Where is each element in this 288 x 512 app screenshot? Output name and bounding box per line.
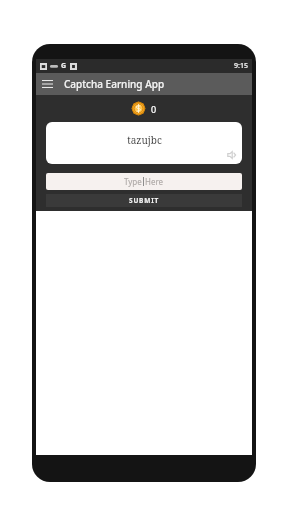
button[interactable]: Play captcha audio bbox=[226, 149, 238, 161]
staticText: 9:15 bbox=[234, 61, 248, 71]
button[interactable]: tazujbc bbox=[46, 122, 242, 164]
button[interactable]: Type bbox=[46, 173, 242, 190]
button[interactable]: Open navigation menu bbox=[36, 73, 58, 95]
staticText: 0 bbox=[151, 103, 157, 115]
button[interactable]: SUBMIT bbox=[46, 194, 242, 207]
staticText: Type bbox=[124, 176, 142, 187]
staticText: tazujbc bbox=[127, 133, 162, 147]
staticText: Here bbox=[145, 176, 164, 187]
staticText: Captcha Earning App bbox=[64, 77, 165, 91]
staticText: G bbox=[61, 61, 67, 71]
staticText: SUBMIT bbox=[129, 196, 160, 205]
